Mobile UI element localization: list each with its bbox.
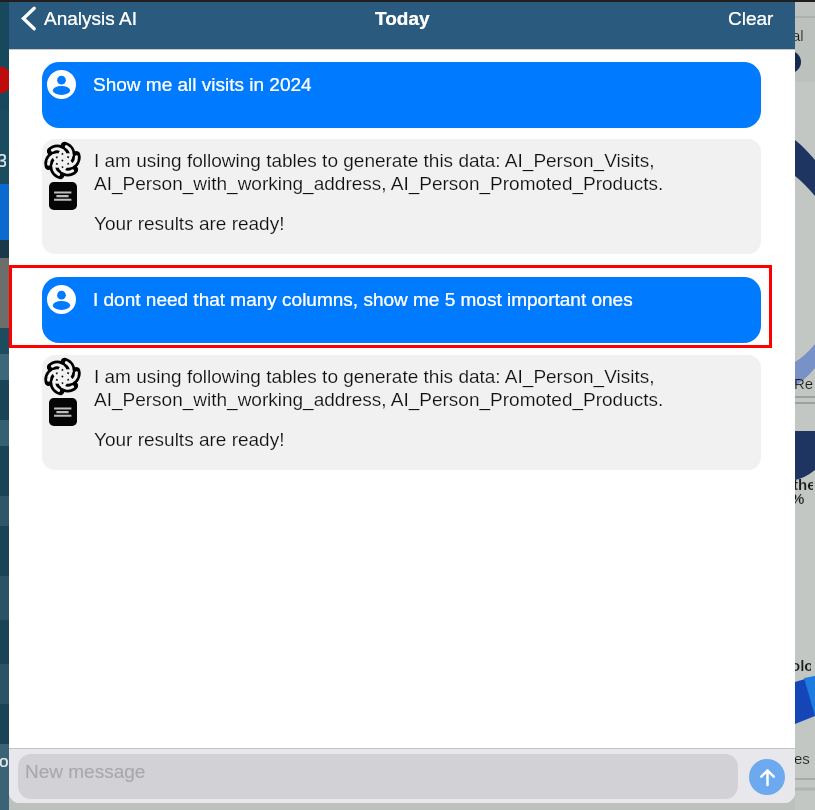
button[interactable]: Clear bbox=[712, 2, 795, 36]
button[interactable]: Send bbox=[749, 759, 785, 795]
staticText: o bbox=[0, 752, 8, 771]
button[interactable]: I am using following tables to generate … bbox=[42, 355, 761, 470]
staticText: Rea bbox=[794, 375, 814, 392]
staticText: es i bbox=[794, 750, 814, 767]
staticText: I am using following tables to generate … bbox=[94, 150, 664, 194]
staticText: Today bbox=[375, 8, 430, 29]
button[interactable]: New message bbox=[18, 754, 738, 799]
staticText: al bbox=[792, 27, 812, 44]
staticText: Your results are ready! bbox=[94, 213, 285, 234]
staticText: Clear bbox=[728, 8, 774, 29]
staticText: New message bbox=[25, 761, 146, 782]
staticText: I am using following tables to generate … bbox=[94, 366, 664, 410]
staticText: the bbox=[793, 476, 813, 493]
staticText: Your results are ready! bbox=[94, 429, 285, 450]
staticText: 34 bbox=[0, 151, 6, 171]
staticText: olog bbox=[791, 657, 811, 674]
staticText: Analysis AI bbox=[44, 8, 137, 29]
staticText: % bbox=[791, 490, 811, 507]
staticText: I dont need that many columns, show me 5… bbox=[93, 289, 633, 310]
button[interactable]: Analysis AI bbox=[9, 2, 147, 37]
button[interactable]: I dont need that many columns, show me 5… bbox=[42, 277, 761, 343]
staticText: Show me all visits in 2024 bbox=[93, 74, 312, 95]
button[interactable]: Show me all visits in 2024 bbox=[42, 62, 761, 128]
button[interactable]: I am using following tables to generate … bbox=[42, 139, 761, 254]
